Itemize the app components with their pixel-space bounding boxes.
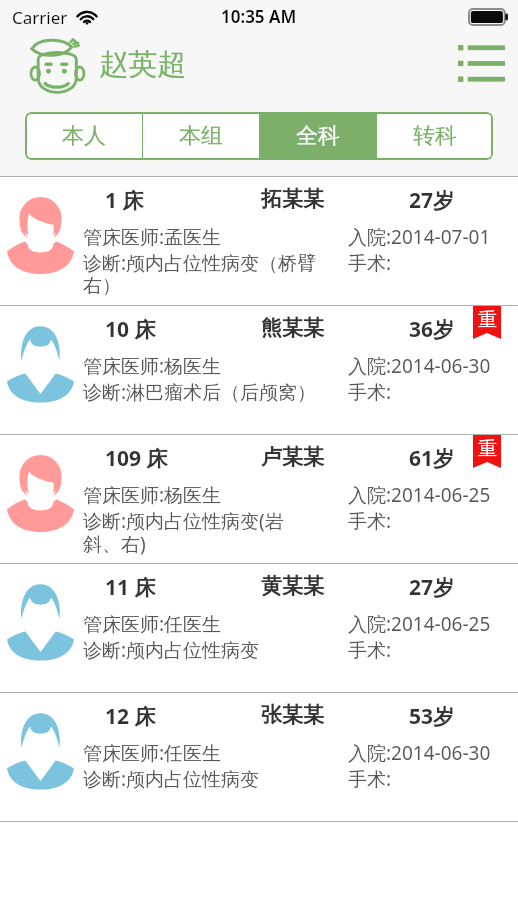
staticText: 10 床: [105, 315, 156, 344]
staticText: 27岁: [409, 573, 455, 602]
staticText: 重: [478, 437, 497, 461]
staticText: 入院:2014-06-25: [348, 611, 491, 637]
staticText: 黄某某: [261, 573, 324, 599]
button[interactable]: 10 床: [0, 306, 518, 434]
staticText: 拓某某: [261, 186, 324, 212]
staticText: 61岁: [409, 444, 455, 473]
staticText: 诊断:淋巴瘤术后（后颅窝）: [83, 379, 317, 405]
staticText: 手术:: [348, 379, 392, 405]
staticText: 管床医师:杨医生: [83, 353, 222, 379]
staticText: 管床医师:孟医生: [83, 224, 222, 250]
staticText: Carrier: [12, 6, 68, 29]
staticText: 赵英超: [99, 46, 186, 83]
button[interactable]: 12 床: [0, 693, 518, 821]
staticText: 手术:: [348, 250, 392, 276]
staticText: 109 床: [105, 444, 168, 473]
button[interactable]: 转科: [377, 112, 493, 160]
staticText: 12 床: [105, 702, 156, 731]
button[interactable]: 本组: [143, 112, 259, 160]
staticText: 27岁: [409, 186, 455, 215]
button[interactable]: 全科: [260, 112, 376, 160]
staticText: 张某某: [261, 702, 324, 728]
button[interactable]: 109 床: [0, 435, 518, 563]
staticText: 1 床: [105, 186, 144, 215]
button[interactable]: 1 床: [0, 177, 518, 305]
staticText: 管床医师:杨医生: [83, 482, 222, 508]
button[interactable]: 11 床: [0, 564, 518, 692]
staticText: 诊断:颅内占位性病变: [83, 637, 260, 663]
staticText: 熊某某: [261, 315, 324, 341]
staticText: 诊断:颅内占位性病变（桥臂 右）: [83, 250, 317, 298]
staticText: 入院:2014-06-25: [348, 482, 491, 508]
staticText: 53岁: [409, 702, 455, 731]
staticText: 全科: [296, 122, 340, 150]
button[interactable]: Menu: [458, 45, 505, 82]
staticText: 入院:2014-06-30: [348, 353, 491, 379]
staticText: 诊断:颅内占位性病变(岩 斜、右): [83, 508, 284, 557]
staticText: 转科: [413, 122, 457, 150]
staticText: 10:35 AM: [221, 5, 297, 28]
button[interactable]: 赵英超: [31, 39, 186, 95]
staticText: 入院:2014-07-01: [348, 224, 491, 250]
staticText: 手术:: [348, 637, 392, 663]
staticText: 11 床: [105, 573, 156, 602]
staticText: 管床医师:任医生: [83, 740, 222, 766]
staticText: 本组: [179, 122, 223, 150]
staticText: 手术:: [348, 508, 392, 534]
button[interactable]: 本人: [25, 112, 142, 160]
staticText: 重: [478, 308, 497, 332]
staticText: 诊断:颅内占位性病变: [83, 766, 260, 792]
staticText: 36岁: [409, 315, 455, 344]
staticText: 手术:: [348, 766, 392, 792]
staticText: 管床医师:任医生: [83, 611, 222, 637]
staticText: 入院:2014-06-30: [348, 740, 491, 766]
staticText: 本人: [62, 122, 106, 150]
staticText: 卢某某: [261, 444, 324, 470]
